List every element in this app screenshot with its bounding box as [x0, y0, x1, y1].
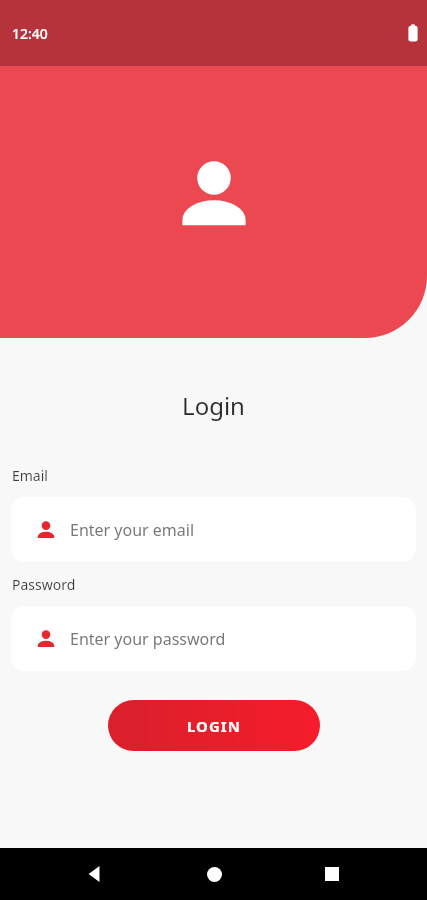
- button[interactable]: Recent apps: [308, 850, 356, 898]
- other: Email: [35, 519, 57, 541]
- staticText: 12:40: [12, 24, 48, 43]
- staticText: LOGIN: [187, 716, 241, 736]
- staticText: Login: [0, 389, 427, 422]
- button[interactable]: LOGIN: [108, 700, 320, 751]
- button[interactable]: Email: [11, 497, 416, 562]
- button[interactable]: Home: [190, 850, 238, 898]
- staticText: Enter your email: [70, 519, 195, 541]
- button[interactable]: Back: [71, 850, 119, 898]
- staticText: Enter your password: [70, 628, 226, 650]
- other: Password: [35, 628, 57, 650]
- button[interactable]: Password: [11, 606, 416, 671]
- staticText: Email: [12, 466, 48, 485]
- staticText: Password: [12, 575, 76, 594]
